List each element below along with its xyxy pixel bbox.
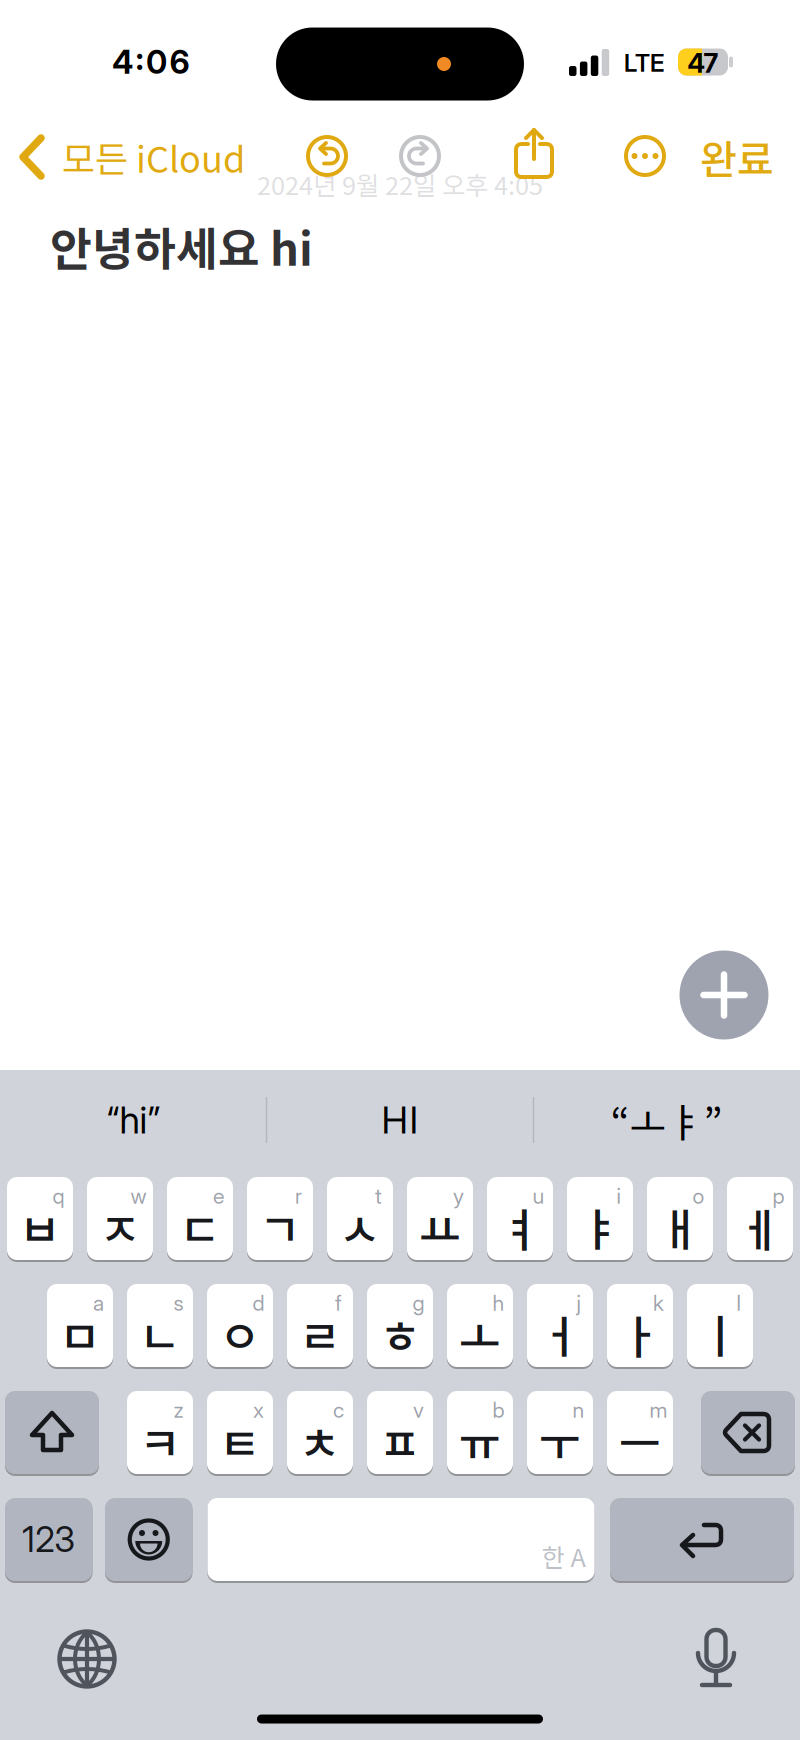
staticText: f [335, 1290, 342, 1316]
button[interactable]: f [287, 1284, 353, 1367]
button[interactable]: e [167, 1177, 233, 1260]
button[interactable]: a [47, 1284, 113, 1367]
staticText: q [52, 1183, 64, 1209]
button[interactable]: 완료 [689, 125, 785, 189]
button[interactable]: s [127, 1284, 193, 1367]
staticText: ㅠ [459, 1408, 501, 1474]
staticText: LTE [624, 48, 664, 77]
button[interactable]: b [447, 1391, 513, 1474]
button[interactable]: Shift [5, 1391, 99, 1474]
staticText: 47 [687, 47, 718, 79]
button[interactable]: HI [275, 1082, 525, 1158]
button[interactable]: p [727, 1177, 793, 1260]
staticText: ㅊ [299, 1408, 341, 1474]
button[interactable]: Share [510, 126, 558, 184]
staticText: v [413, 1397, 424, 1423]
staticText: k [653, 1290, 664, 1316]
button[interactable]: n [527, 1391, 593, 1474]
button[interactable]: Numbers [5, 1498, 92, 1581]
staticText: e [213, 1183, 224, 1209]
staticText: o [692, 1183, 704, 1209]
staticText: i [616, 1183, 620, 1209]
staticText: ㅏ [619, 1301, 661, 1367]
staticText: y [453, 1183, 464, 1209]
staticText: p [772, 1183, 784, 1209]
staticText: n [572, 1397, 584, 1423]
staticText: ㄴ [139, 1301, 181, 1367]
staticText: b [492, 1397, 504, 1423]
button[interactable]: l [687, 1284, 753, 1367]
button[interactable]: Redo [397, 133, 443, 179]
staticText: z [173, 1397, 183, 1423]
button[interactable]: w [87, 1177, 153, 1260]
staticText: ㅇ [219, 1301, 261, 1367]
button[interactable]: Undo [304, 133, 350, 179]
button[interactable]: Delete [701, 1391, 795, 1474]
staticText: w [130, 1183, 146, 1209]
staticText: 모든 iCloud [62, 131, 245, 183]
staticText: ㅌ [219, 1408, 261, 1474]
button[interactable]: x [207, 1391, 273, 1474]
button[interactable]: Emoji [105, 1498, 192, 1581]
staticText: ㄷ [179, 1194, 221, 1260]
staticText: 안녕하세요 hi [50, 213, 313, 279]
button[interactable]: u [487, 1177, 553, 1260]
button[interactable]: y [407, 1177, 473, 1260]
button[interactable]: h [447, 1284, 513, 1367]
staticText: ㅁ [59, 1301, 101, 1367]
staticText: g [412, 1290, 424, 1316]
staticText: s [173, 1290, 183, 1316]
staticText: ㅈ [99, 1194, 141, 1260]
staticText: “hi” [106, 1097, 160, 1143]
button[interactable]: g [367, 1284, 433, 1367]
staticText: ㅜ [539, 1408, 581, 1474]
button[interactable]: d [207, 1284, 273, 1367]
staticText: 2024년 9월 22일 오후 4:05 [257, 166, 543, 202]
button[interactable]: r [247, 1177, 313, 1260]
staticText: ㅣ [699, 1301, 741, 1367]
button[interactable]: Return [610, 1498, 794, 1581]
button[interactable]: t [327, 1177, 393, 1260]
staticText: ㅅ [339, 1194, 381, 1260]
staticText: HI [381, 1097, 418, 1143]
staticText: d [252, 1290, 264, 1316]
staticText: c [333, 1397, 344, 1423]
staticText: x [253, 1397, 264, 1423]
staticText: r [295, 1183, 302, 1209]
staticText: m [649, 1397, 667, 1423]
staticText: l [736, 1290, 740, 1316]
staticText: h [492, 1290, 504, 1316]
button[interactable]: z [127, 1391, 193, 1474]
staticText: a [93, 1290, 104, 1316]
button[interactable]: m [607, 1391, 673, 1474]
button[interactable]: Space [207, 1498, 594, 1581]
staticText: 4:06 [112, 43, 190, 81]
button[interactable]: “hi” [8, 1082, 258, 1158]
button[interactable]: 모든 iCloud [0, 121, 300, 193]
staticText: ㅍ [379, 1408, 421, 1474]
button[interactable]: Dictation [687, 1629, 745, 1687]
staticText: ㅡ [619, 1408, 661, 1474]
staticText: ㅛ [419, 1194, 461, 1260]
staticText: ㅕ [499, 1194, 541, 1260]
button[interactable]: k [607, 1284, 673, 1367]
staticText: 123 [22, 1518, 75, 1560]
button[interactable]: v [367, 1391, 433, 1474]
staticText: ㅎ [379, 1301, 421, 1367]
staticText: ㅗ [459, 1301, 501, 1367]
button[interactable]: More [622, 133, 668, 179]
button[interactable]: c [287, 1391, 353, 1474]
button[interactable]: j [527, 1284, 593, 1367]
button[interactable]: i [567, 1177, 633, 1260]
staticText: u [532, 1183, 544, 1209]
staticText: ㅓ [539, 1301, 581, 1367]
button[interactable]: o [647, 1177, 713, 1260]
button[interactable]: New note [679, 950, 768, 1039]
button[interactable]: Next keyboard [59, 1631, 115, 1687]
staticText: ㄱ [259, 1194, 301, 1260]
button[interactable]: “ㅗㅑ” [541, 1082, 791, 1158]
staticText: j [576, 1290, 580, 1316]
button[interactable]: q [7, 1177, 73, 1260]
staticText: ㅔ [739, 1194, 781, 1260]
staticText: ㅋ [139, 1408, 181, 1474]
